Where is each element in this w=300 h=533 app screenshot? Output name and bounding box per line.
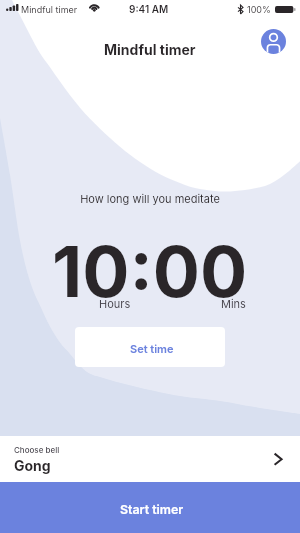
staticText: Set time [130, 342, 174, 355]
other: Choose bell [270, 451, 286, 467]
staticText: 100% [247, 4, 271, 15]
button[interactable]: Choose bell [0, 436, 300, 482]
staticText: 10:00 [52, 229, 248, 314]
staticText: Mindful timer [21, 4, 78, 15]
staticText: Start timer [120, 502, 184, 517]
button[interactable]: Start timer [0, 482, 300, 533]
staticText: How long will you meditate [0, 192, 300, 205]
staticText: Gong [14, 457, 51, 474]
button[interactable]: Set time [75, 327, 225, 367]
staticText: Mins [221, 297, 246, 310]
staticText: 9:41 AM [129, 3, 169, 15]
staticText: Hours [99, 297, 131, 310]
button[interactable]: Profile [261, 29, 286, 54]
staticText: Choose bell [14, 445, 60, 455]
staticText: Mindful timer [104, 41, 196, 58]
